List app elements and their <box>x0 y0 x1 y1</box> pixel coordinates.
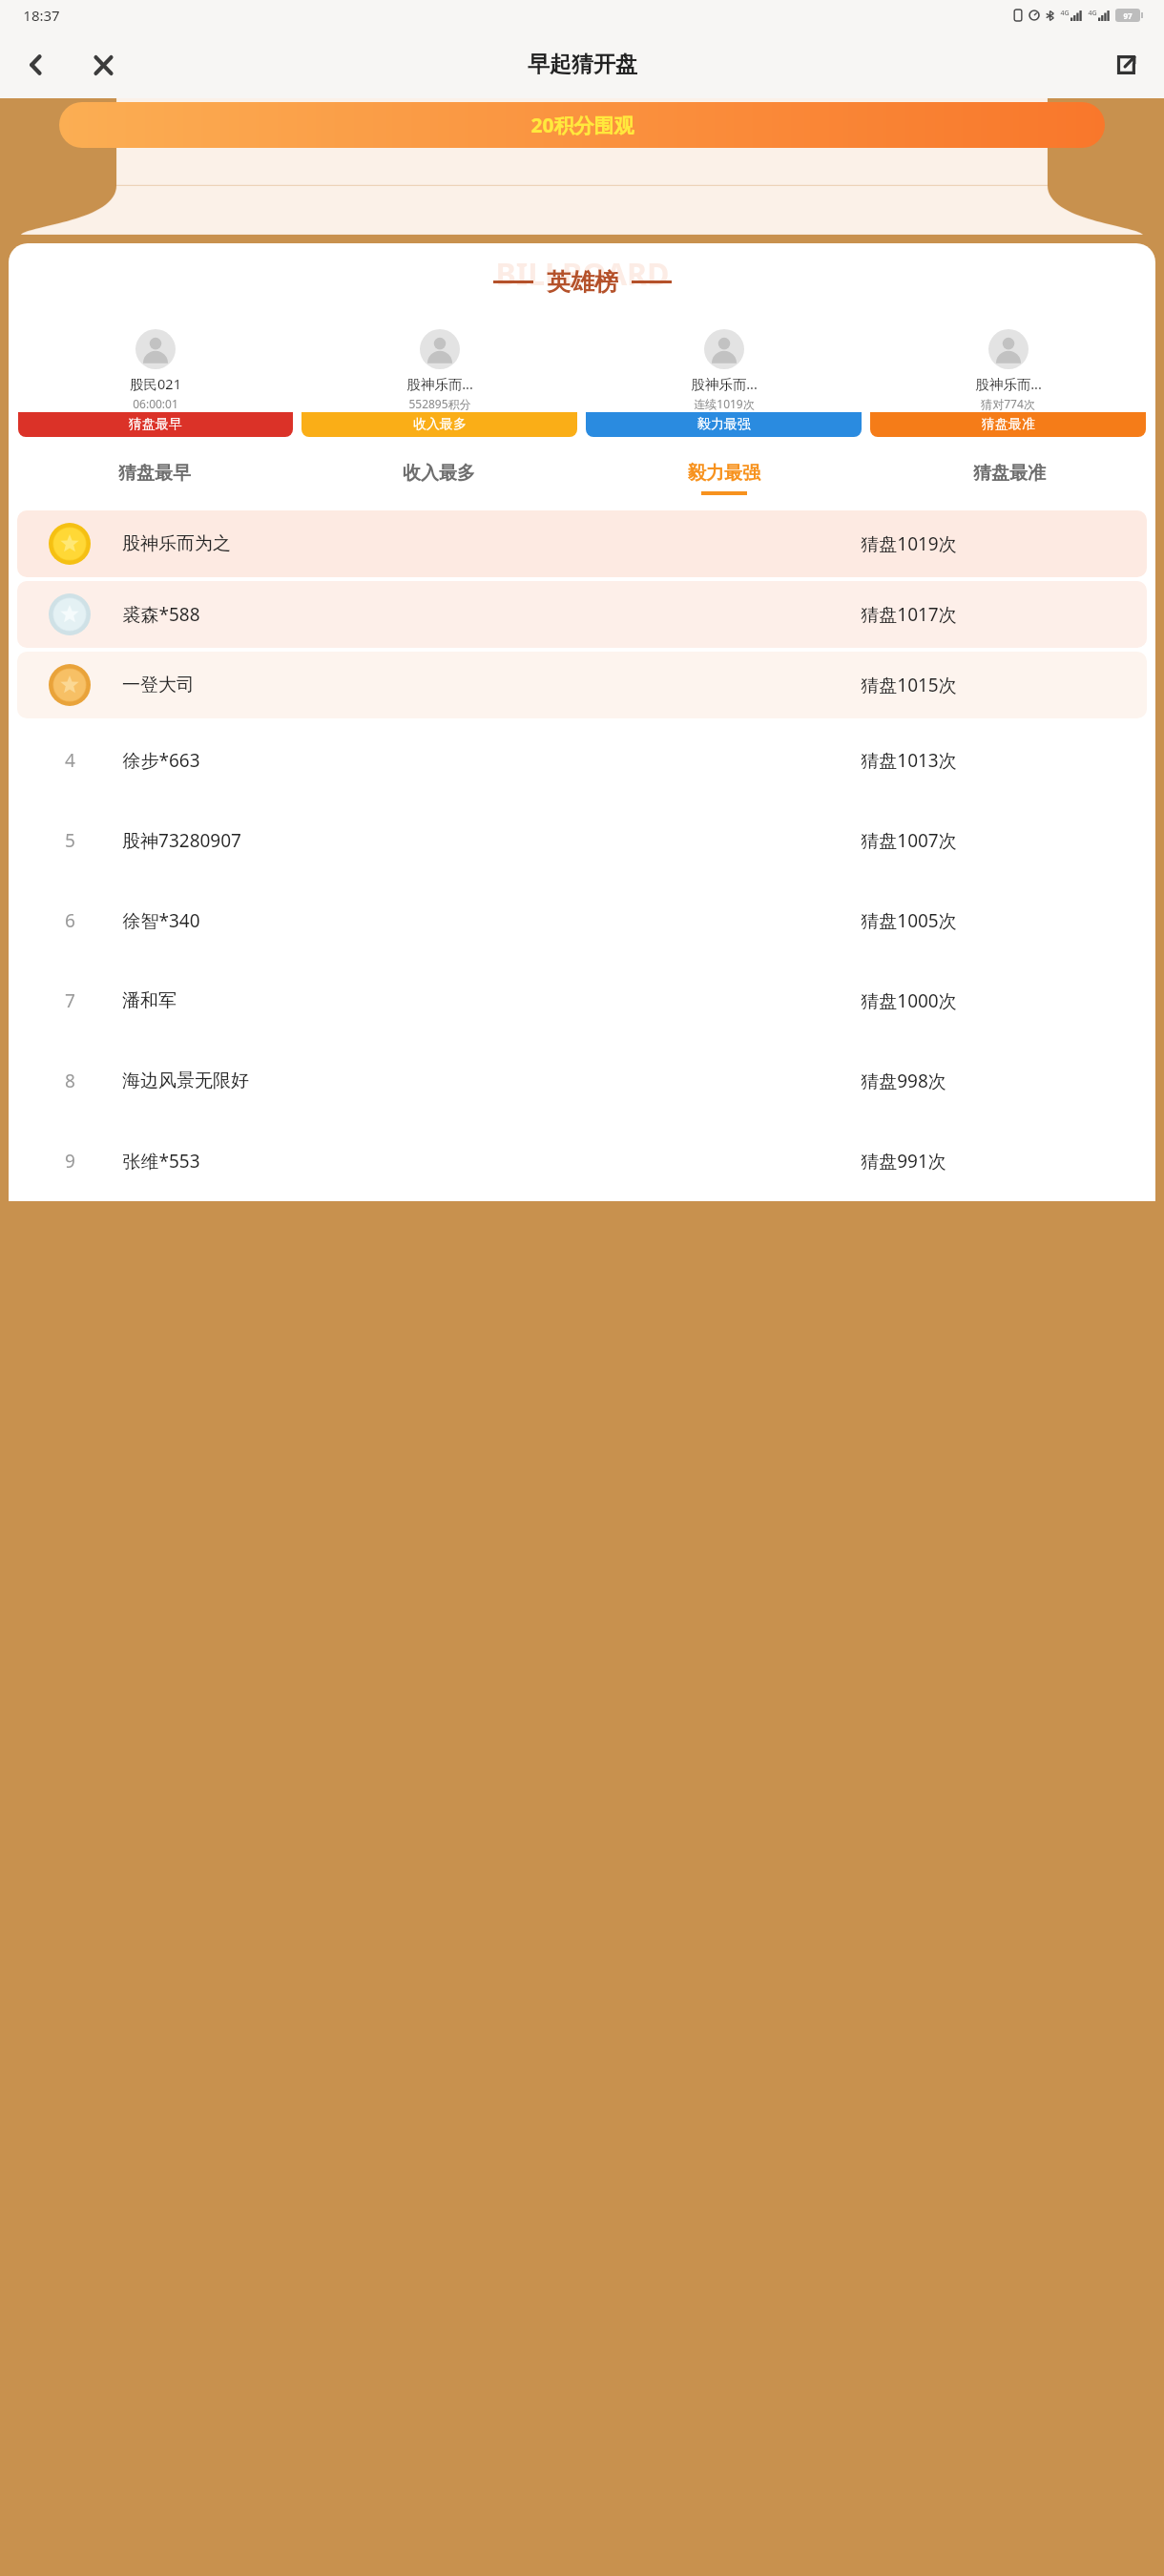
button[interactable]: 收入最多 <box>297 462 581 495</box>
staticText: 4G <box>1088 9 1097 18</box>
staticText: 潘和军 <box>122 989 177 1012</box>
staticText: 股神乐而为之 <box>122 532 231 555</box>
staticText: 股神乐而... <box>975 374 1042 393</box>
staticText: 猜盘最准 <box>973 462 1046 485</box>
staticText: 张维*553 <box>122 1149 200 1174</box>
staticText: 猜盘991次 <box>861 1149 946 1174</box>
staticText: 猜盘1005次 <box>861 908 957 933</box>
staticText: 6 <box>65 908 75 933</box>
staticText: 552895积分 <box>408 396 471 411</box>
button[interactable]: 股神乐而... <box>586 322 862 437</box>
staticText: 猜盘1015次 <box>861 673 957 697</box>
staticText: 收入最多 <box>403 462 475 485</box>
staticText: 股神乐而... <box>691 374 758 393</box>
button[interactable]: 6 <box>17 883 1147 959</box>
button[interactable]: 20积分围观 <box>59 102 1105 148</box>
button[interactable]: 一登大司 <box>17 652 1147 718</box>
staticText: 早起猜开盘 <box>528 51 637 78</box>
staticText: 徐智*340 <box>122 908 200 933</box>
staticText: BILLBOARD <box>495 253 670 295</box>
staticText: 猜盘998次 <box>861 1069 946 1093</box>
staticText: 97 <box>1123 10 1133 21</box>
button[interactable]: Share <box>1103 42 1149 88</box>
button[interactable]: Back <box>13 42 59 88</box>
staticText: 英雄榜 <box>547 267 618 297</box>
staticText: 猜盘1007次 <box>861 828 957 853</box>
staticText: 18:37 <box>23 6 60 25</box>
button[interactable]: 股神乐而... <box>870 322 1146 437</box>
staticText: 猜对774次 <box>981 396 1035 411</box>
staticText: 猜盘1019次 <box>861 531 957 556</box>
staticText: 猜盘1013次 <box>861 748 957 773</box>
button[interactable]: 4 <box>17 722 1147 799</box>
button[interactable]: 猜盘最准 <box>866 462 1152 495</box>
staticText: 毅力最强 <box>688 462 760 485</box>
staticText: 海边风景无限好 <box>122 1070 249 1092</box>
button[interactable]: 猜盘最早 <box>12 462 297 495</box>
staticText: 毅力最强 <box>697 416 751 433</box>
button[interactable]: 毅力最强 <box>581 462 866 495</box>
staticText: 7 <box>65 988 75 1013</box>
staticText: 20积分围观 <box>530 112 634 139</box>
button[interactable]: 5 <box>17 802 1147 879</box>
staticText: 猜盘最早 <box>118 462 191 485</box>
staticText: 猜盘最早 <box>129 416 182 433</box>
staticText: 股神乐而... <box>406 374 473 393</box>
staticText: 一登大司 <box>122 674 195 696</box>
staticText: 股神73280907 <box>122 828 241 853</box>
staticText: 5 <box>65 828 75 853</box>
staticText: 连续1019次 <box>694 396 755 411</box>
staticText: 裘森*588 <box>122 602 200 627</box>
button[interactable]: 股神乐而... <box>301 322 577 437</box>
staticText: 9 <box>65 1149 75 1174</box>
staticText: 股民021 <box>130 374 181 393</box>
staticText: 徐步*663 <box>122 748 200 773</box>
staticText: 猜盘1017次 <box>861 602 957 627</box>
staticText: 4G <box>1060 9 1070 18</box>
button[interactable]: 裘森*588 <box>17 581 1147 648</box>
staticText: 猜盘最准 <box>982 416 1035 433</box>
staticText: 收入最多 <box>413 416 467 433</box>
staticText: 8 <box>65 1069 75 1093</box>
button[interactable]: 9 <box>17 1123 1147 1199</box>
staticText: 4 <box>65 748 75 773</box>
staticText: 猜盘1000次 <box>861 988 957 1013</box>
button[interactable]: 股神乐而为之 <box>17 510 1147 577</box>
button[interactable]: Close <box>80 42 126 88</box>
button[interactable]: 8 <box>17 1043 1147 1119</box>
button[interactable]: 股民021 <box>18 322 293 437</box>
staticText: 06:00:01 <box>133 396 178 411</box>
button[interactable]: 7 <box>17 963 1147 1039</box>
